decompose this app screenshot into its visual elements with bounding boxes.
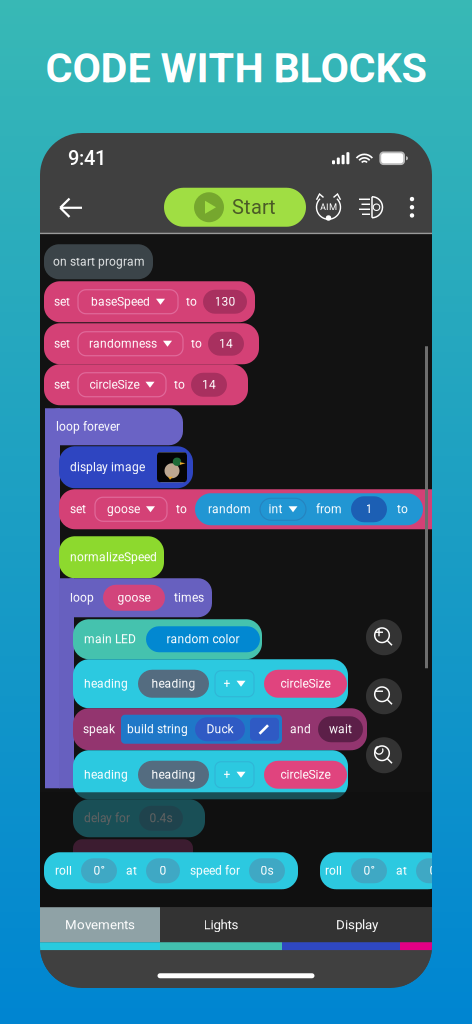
staticText: on start program (53, 255, 145, 269)
staticText: CODE WITH BLOCKS (45, 44, 426, 92)
staticText: delay for (84, 811, 130, 825)
staticText: 14 (219, 337, 233, 351)
button[interactable]: Lights (160, 907, 282, 942)
staticText: normalizeSpeed (70, 550, 157, 564)
staticText: times (174, 591, 204, 605)
button[interactable]: Sensors (358, 194, 386, 221)
staticText: circleSize (280, 677, 330, 691)
staticText: + (223, 677, 230, 691)
staticText: set (54, 295, 70, 309)
staticText: int (268, 502, 282, 516)
staticText: 0.4s (149, 811, 172, 825)
staticText: Lights (203, 917, 238, 932)
button[interactable]: Movements (40, 907, 160, 942)
staticText: from (316, 502, 342, 516)
staticText: circleSize (280, 768, 330, 782)
staticText: set (54, 378, 70, 392)
button[interactable]: Aim (315, 194, 342, 221)
staticText: goose (117, 591, 150, 605)
button[interactable]: Zoom out (366, 678, 402, 714)
staticText: 0 (159, 864, 166, 878)
staticText: Start (232, 195, 276, 219)
staticText: heading (84, 768, 128, 782)
staticText: random (208, 502, 251, 516)
staticText: wait (329, 722, 352, 736)
staticText: to (397, 502, 408, 516)
staticText: loop forever (56, 420, 120, 434)
staticText: circleSize (89, 378, 139, 392)
staticText: heading (84, 677, 128, 691)
staticText: 0° (93, 864, 104, 878)
staticText: set (54, 337, 70, 351)
staticText: at (396, 864, 407, 878)
staticText: speak (83, 722, 115, 736)
staticText: to (191, 337, 202, 351)
staticText: baseSpeed (91, 295, 150, 309)
staticText: build string (127, 722, 188, 736)
button[interactable]: Back (49, 186, 93, 230)
staticText: 0s (260, 864, 273, 878)
staticText: 14 (202, 378, 216, 392)
staticText: and (290, 722, 311, 736)
staticText: random color (166, 632, 239, 646)
staticText: loop (70, 591, 94, 605)
staticText: 9:41 (68, 146, 106, 170)
staticText: + (223, 768, 230, 782)
staticText: Duck (206, 722, 233, 736)
staticText: main LED (84, 632, 136, 646)
button[interactable]: Start (164, 188, 306, 227)
staticText: Movements (65, 917, 135, 932)
staticText: 130 (214, 295, 235, 309)
staticText: heading (151, 677, 195, 691)
staticText: set (70, 502, 86, 516)
staticText: display image (70, 460, 145, 474)
staticText: roll (55, 864, 72, 878)
staticText: Display (336, 917, 378, 932)
staticText: to (186, 295, 197, 309)
staticText: at (126, 864, 137, 878)
button[interactable]: More options (404, 194, 420, 221)
staticText: speed for (190, 864, 240, 878)
button[interactable]: Display (282, 907, 432, 942)
staticText: roll (325, 864, 342, 878)
staticText: AIM (320, 202, 337, 213)
staticText: goose (107, 502, 140, 516)
staticText: randomness (89, 337, 157, 351)
staticText: 0° (363, 864, 374, 878)
staticText: 0 (429, 864, 436, 878)
button[interactable]: Zoom in (366, 619, 402, 655)
staticText: 1 (365, 502, 372, 516)
staticText: to (174, 378, 185, 392)
staticText: to (176, 502, 187, 516)
staticText: heading (151, 768, 195, 782)
button[interactable]: Reset zoom (366, 737, 402, 773)
